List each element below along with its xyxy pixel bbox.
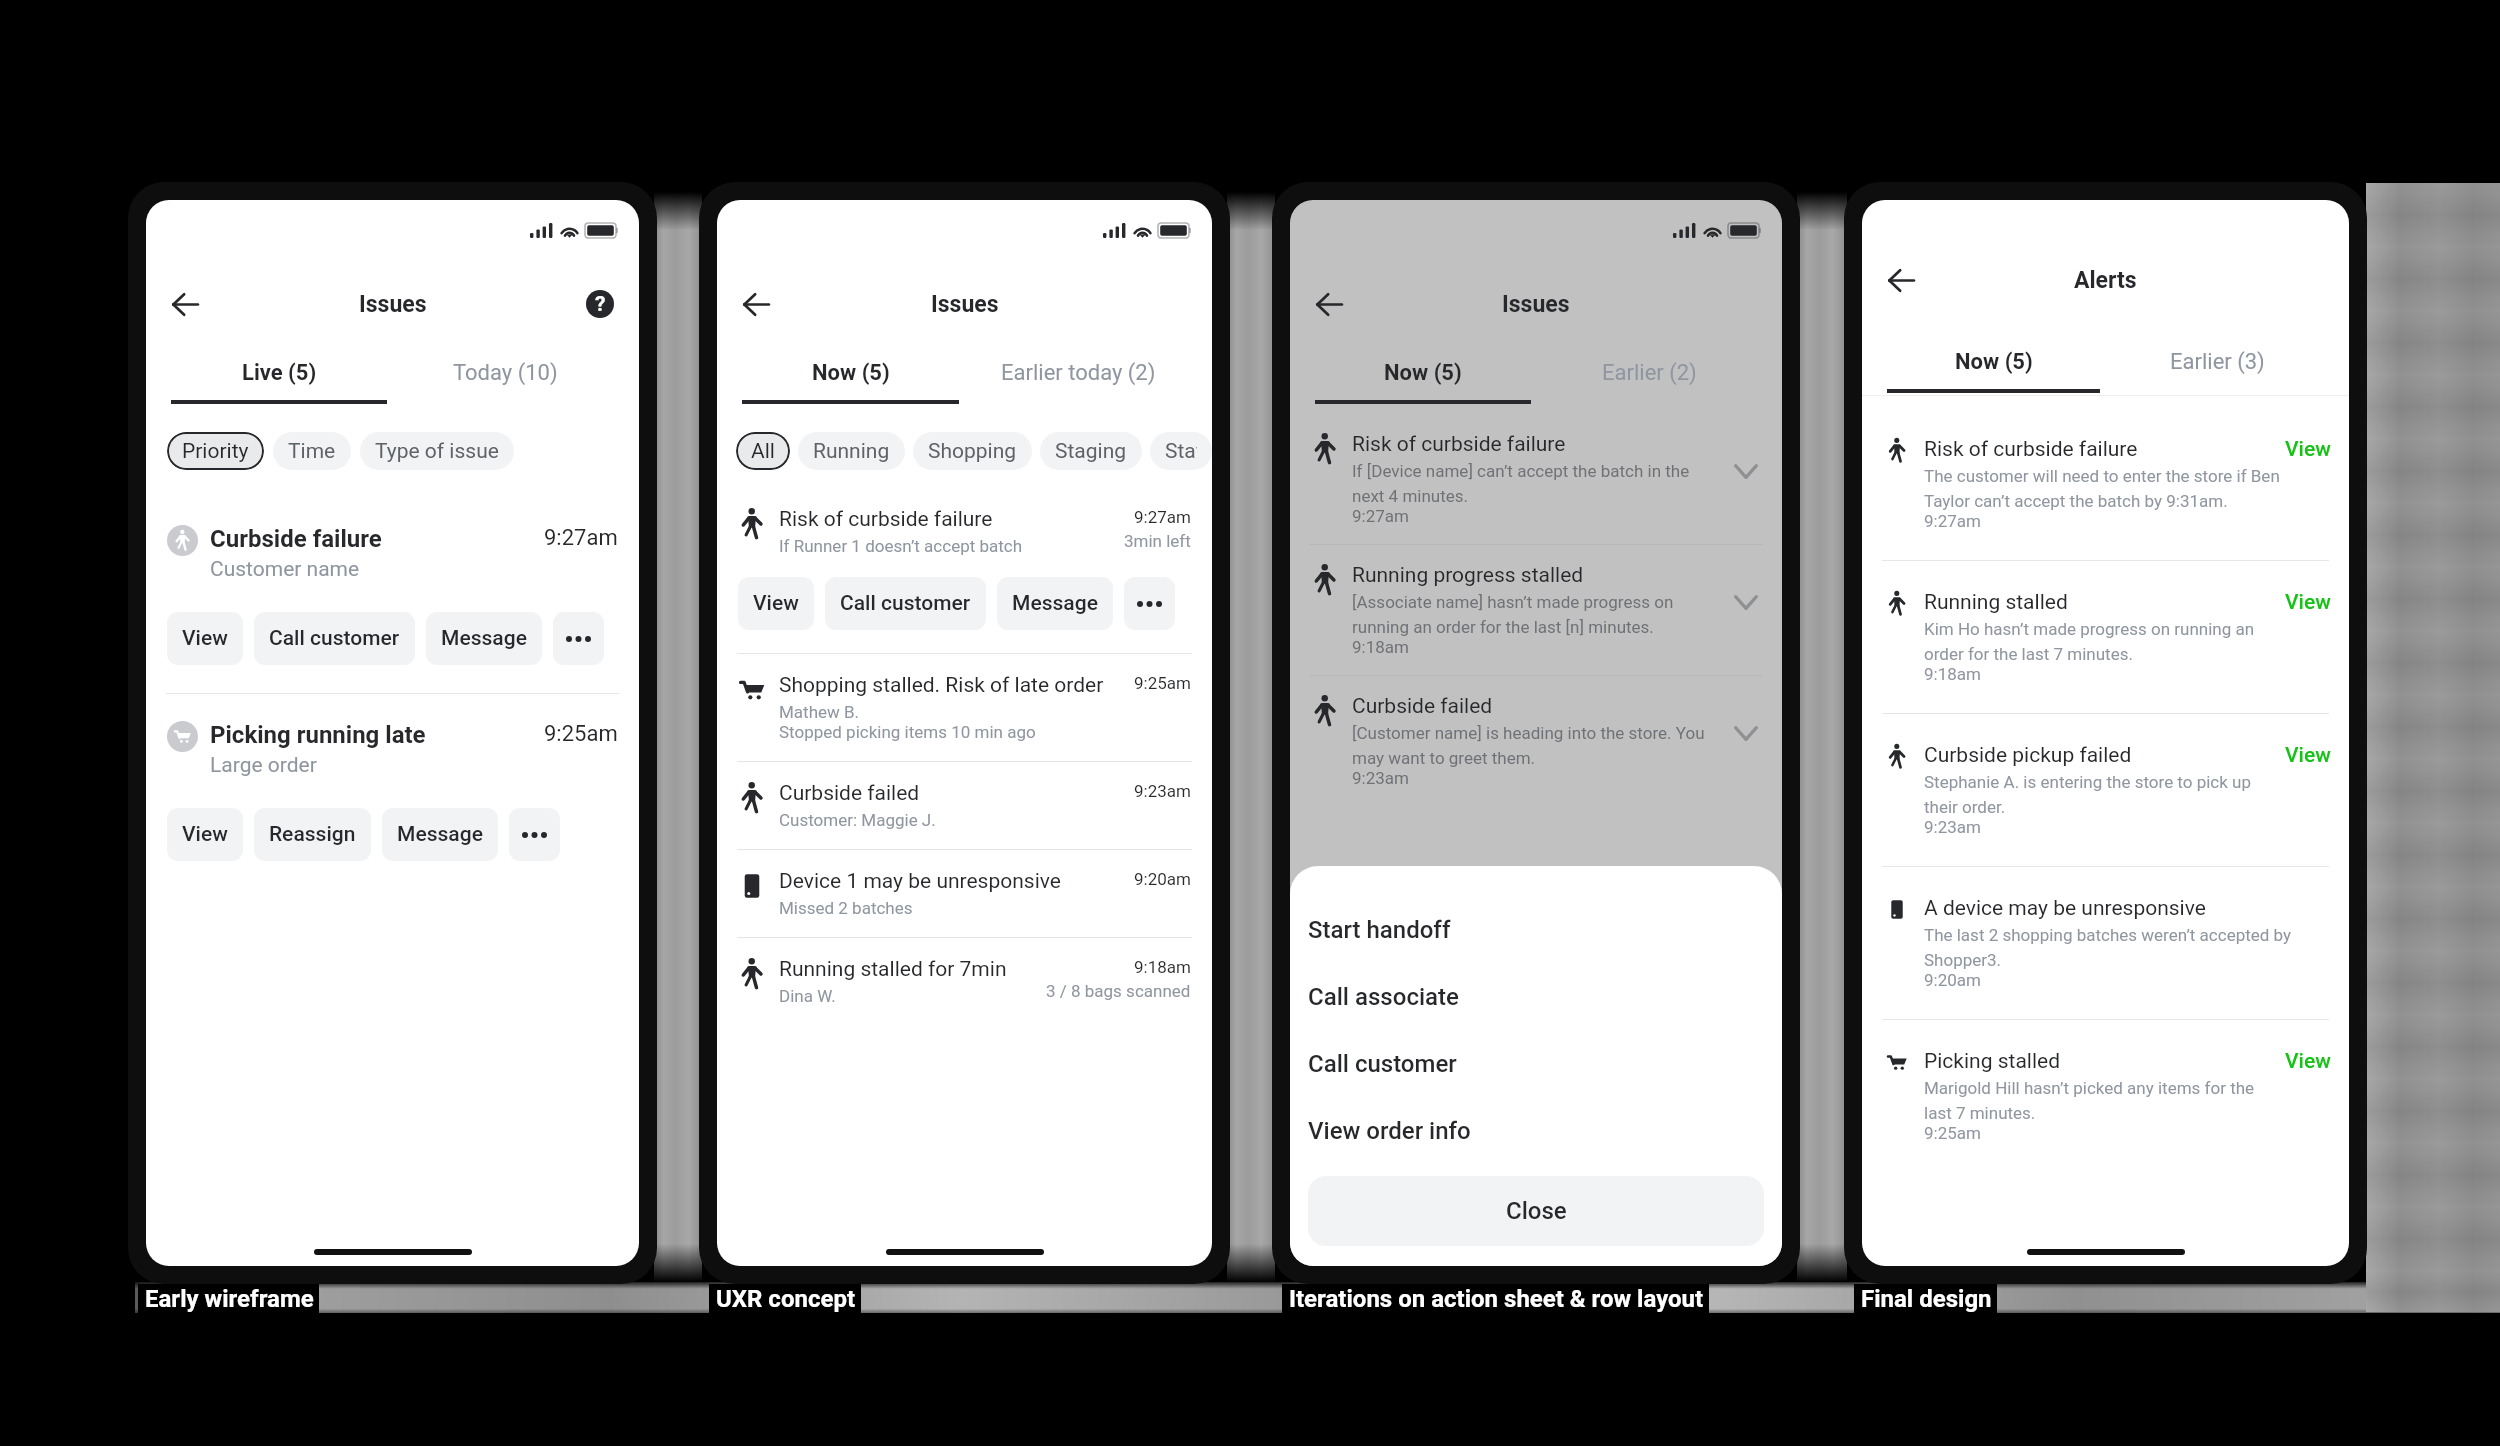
staticText: Staff: [1165, 439, 1197, 464]
button[interactable]: Now (5): [1882, 349, 2105, 393]
staticText: 3min left: [1124, 531, 1191, 551]
button[interactable]: Message: [426, 612, 542, 665]
staticText: 9:23am: [1352, 768, 1409, 788]
button[interactable]: Back: [737, 285, 775, 323]
button[interactable]: Risk of curbside failure: [1862, 408, 2349, 560]
staticText: 9:20am: [1924, 970, 1981, 990]
staticText: 9:20am: [1134, 869, 1191, 889]
button[interactable]: Expand: [1731, 718, 1761, 748]
button[interactable]: Running stalled for 7min: [717, 938, 1212, 1025]
staticText: 3 / 8 bags scanned: [1046, 981, 1191, 1001]
staticText: Running stalled: [1924, 590, 2068, 615]
button[interactable]: Today (10): [392, 360, 619, 404]
button[interactable]: Now (5): [737, 360, 964, 404]
button[interactable]: More options: [1124, 577, 1175, 630]
staticText: Customer: Maggie J.: [779, 810, 936, 830]
button[interactable]: Now (5): [1310, 360, 1536, 404]
button[interactable]: Earlier (2): [1536, 360, 1762, 404]
button[interactable]: Risk of curbside failure: [1290, 414, 1782, 544]
button[interactable]: Back: [1882, 261, 1920, 299]
button[interactable]: Back: [166, 285, 204, 323]
button[interactable]: Close: [1308, 1176, 1764, 1246]
staticText: 9:18am: [1352, 637, 1409, 657]
staticText: The customer will need to enter the stor…: [1924, 466, 2281, 511]
button[interactable]: View: [2285, 743, 2331, 768]
button[interactable]: Shopping stalled. Risk of late order: [717, 654, 1212, 761]
staticText: Final design: [1861, 1285, 1992, 1313]
button[interactable]: Earlier (3): [2105, 349, 2329, 393]
button[interactable]: Back: [1310, 285, 1348, 323]
staticText: Now (5): [1384, 360, 1462, 386]
button[interactable]: Help: [581, 285, 619, 323]
button[interactable]: Running stalled: [1862, 561, 2349, 713]
staticText: Kim Ho hasn’t made progress on running a…: [1924, 619, 2281, 664]
staticText: Picking running late: [210, 721, 426, 749]
staticText: Early wireframe: [145, 1285, 314, 1313]
staticText: [Customer name] is heading into the stor…: [1352, 723, 1721, 768]
button[interactable]: Earlier today (2): [964, 360, 1192, 404]
button[interactable]: Curbside failed: [1290, 676, 1782, 806]
staticText: A device may be unresponsive: [1924, 896, 2206, 921]
button[interactable]: Staff: [1150, 432, 1212, 470]
button[interactable]: Curbside failure: [146, 525, 639, 665]
staticText: Message: [1012, 591, 1098, 616]
button[interactable]: Type of issue: [360, 432, 514, 470]
button[interactable]: Curbside pickup failed: [1862, 714, 2349, 866]
staticText: Call customer: [1308, 1050, 1457, 1078]
button[interactable]: Device 1 may be unresponsive: [717, 850, 1212, 937]
button[interactable]: Running progress stalled: [1290, 545, 1782, 675]
staticText: Close: [1506, 1197, 1567, 1225]
button[interactable]: Time: [273, 432, 351, 470]
button[interactable]: View: [738, 577, 814, 630]
staticText: Priority: [182, 439, 249, 464]
button[interactable]: Reassign: [254, 808, 371, 861]
button[interactable]: More options: [509, 808, 560, 861]
staticText: Type of issue: [375, 439, 499, 464]
staticText: Curbside failed: [779, 781, 920, 806]
button[interactable]: View: [2285, 1049, 2331, 1074]
button[interactable]: View: [167, 808, 243, 861]
staticText: View: [2285, 437, 2331, 462]
button[interactable]: Message: [382, 808, 498, 861]
button[interactable]: Picking running late: [146, 721, 639, 861]
staticText: 9:27am: [1134, 507, 1191, 527]
staticText: Picking stalled: [1924, 1049, 2061, 1074]
button[interactable]: View: [2285, 590, 2331, 615]
button[interactable]: View order info: [1308, 1097, 1764, 1164]
button[interactable]: More options: [553, 612, 604, 665]
staticText: 9:27am: [1924, 511, 1981, 531]
button[interactable]: View: [2285, 437, 2331, 462]
button[interactable]: A device may be unresponsive: [1862, 867, 2349, 1019]
button[interactable]: Priority: [167, 432, 264, 470]
button[interactable]: Call customer: [1308, 1030, 1764, 1097]
button[interactable]: Call associate: [1308, 963, 1764, 1030]
staticText: 9:18am: [1134, 957, 1191, 977]
staticText: Call associate: [1308, 983, 1459, 1011]
staticText: View: [182, 822, 228, 847]
staticText: View: [2285, 590, 2331, 615]
button[interactable]: View: [167, 612, 243, 665]
staticText: Now (5): [1955, 349, 2033, 375]
button[interactable]: Shopping: [913, 432, 1032, 470]
button[interactable]: Call customer: [825, 577, 986, 630]
staticText: Issues: [931, 291, 999, 318]
button[interactable]: Risk of curbside failure: [717, 507, 1212, 653]
staticText: Shopping stalled. Risk of late order: [779, 673, 1104, 698]
staticText: View: [2285, 1049, 2331, 1074]
staticText: View: [2285, 743, 2331, 768]
button[interactable]: Live (5): [166, 360, 392, 404]
button[interactable]: Expand: [1731, 456, 1761, 486]
button[interactable]: Curbside failed: [717, 762, 1212, 849]
staticText: 9:27am: [1352, 506, 1409, 526]
staticText: Now (5): [812, 360, 890, 386]
staticText: Running: [813, 439, 890, 464]
button[interactable]: Call customer: [254, 612, 415, 665]
button[interactable]: Running: [798, 432, 905, 470]
button[interactable]: Expand: [1731, 587, 1761, 617]
button[interactable]: All: [736, 432, 790, 470]
button[interactable]: Message: [997, 577, 1113, 630]
button[interactable]: Staging: [1040, 432, 1142, 470]
button[interactable]: Start handoff: [1308, 896, 1764, 963]
button[interactable]: Picking stalled: [1862, 1020, 2349, 1172]
staticText: Curbside failure: [210, 525, 382, 553]
